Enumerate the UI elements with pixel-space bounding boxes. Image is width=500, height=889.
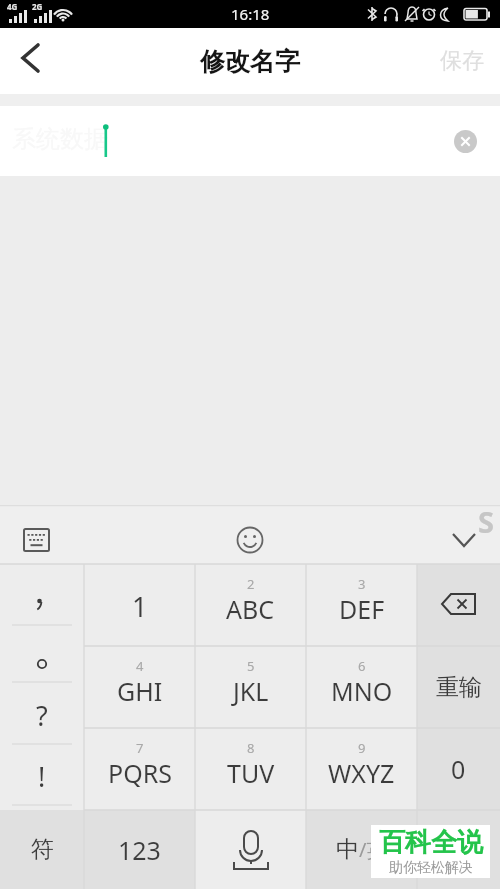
button[interactable]: [454, 130, 477, 153]
button[interactable]: [10, 41, 54, 81]
staticText: 6: [358, 657, 366, 675]
button[interactable]: 5: [195, 646, 306, 728]
staticText: 助你轻松解决: [389, 859, 473, 877]
staticText: 1: [132, 588, 148, 625]
button[interactable]: [195, 810, 306, 889]
button[interactable]: 8: [195, 728, 306, 810]
staticText: DEF: [339, 592, 385, 626]
staticText: 16:18: [231, 4, 270, 24]
staticText: !: [38, 758, 46, 795]
staticText: TUV: [227, 756, 275, 790]
button[interactable]: 保存: [440, 47, 484, 75]
staticText: WXYZ: [328, 756, 395, 790]
button[interactable]: 重输: [417, 646, 500, 728]
staticText: JKL: [233, 674, 269, 708]
button[interactable]: 9: [306, 728, 417, 810]
staticText: 0: [451, 752, 466, 786]
button[interactable]: 6: [306, 646, 417, 728]
button[interactable]: 7: [84, 728, 195, 810]
button[interactable]: !: [10, 750, 74, 802]
staticText: 9: [358, 739, 366, 757]
staticText: GHI: [117, 674, 163, 708]
button[interactable]: 3: [306, 564, 417, 646]
staticText: 2G: [32, 1, 43, 12]
staticText: 符: [31, 835, 54, 864]
staticText: ABC: [226, 592, 275, 626]
button[interactable]: 中: [306, 810, 417, 889]
staticText: S: [478, 502, 494, 541]
button[interactable]: 2: [195, 564, 306, 646]
button[interactable]: 0: [417, 728, 500, 810]
button[interactable]: [440, 520, 486, 560]
staticText: 中: [336, 835, 359, 864]
staticText: PQRS: [108, 756, 172, 790]
button[interactable]: [417, 564, 500, 646]
staticText: 7: [136, 739, 144, 757]
button[interactable]: [16, 521, 58, 559]
button[interactable]: 符: [0, 810, 84, 889]
button[interactable]: 系统数据: [0, 106, 500, 176]
button[interactable]: [10, 574, 74, 622]
staticText: 2: [247, 575, 255, 593]
staticText: /英: [359, 836, 387, 863]
staticText: 重输: [436, 673, 482, 702]
staticText: 4: [136, 657, 144, 675]
staticText: 百科全说: [379, 826, 483, 859]
staticText: 4G: [7, 1, 18, 12]
staticText: ?: [36, 697, 48, 734]
button[interactable]: 4: [84, 646, 195, 728]
button[interactable]: ?: [10, 689, 74, 741]
staticText: 修改名字: [200, 46, 300, 77]
staticText: 系统数据: [12, 124, 108, 154]
staticText: 5: [247, 657, 255, 675]
button[interactable]: [10, 632, 74, 680]
button[interactable]: 123: [84, 810, 195, 889]
staticText: 保存: [440, 47, 484, 75]
staticText: 8: [247, 739, 255, 757]
button[interactable]: 1: [84, 564, 195, 646]
staticText: 123: [118, 833, 161, 867]
staticText: MNO: [331, 674, 393, 708]
button[interactable]: [230, 520, 270, 560]
staticText: 3: [358, 575, 366, 593]
